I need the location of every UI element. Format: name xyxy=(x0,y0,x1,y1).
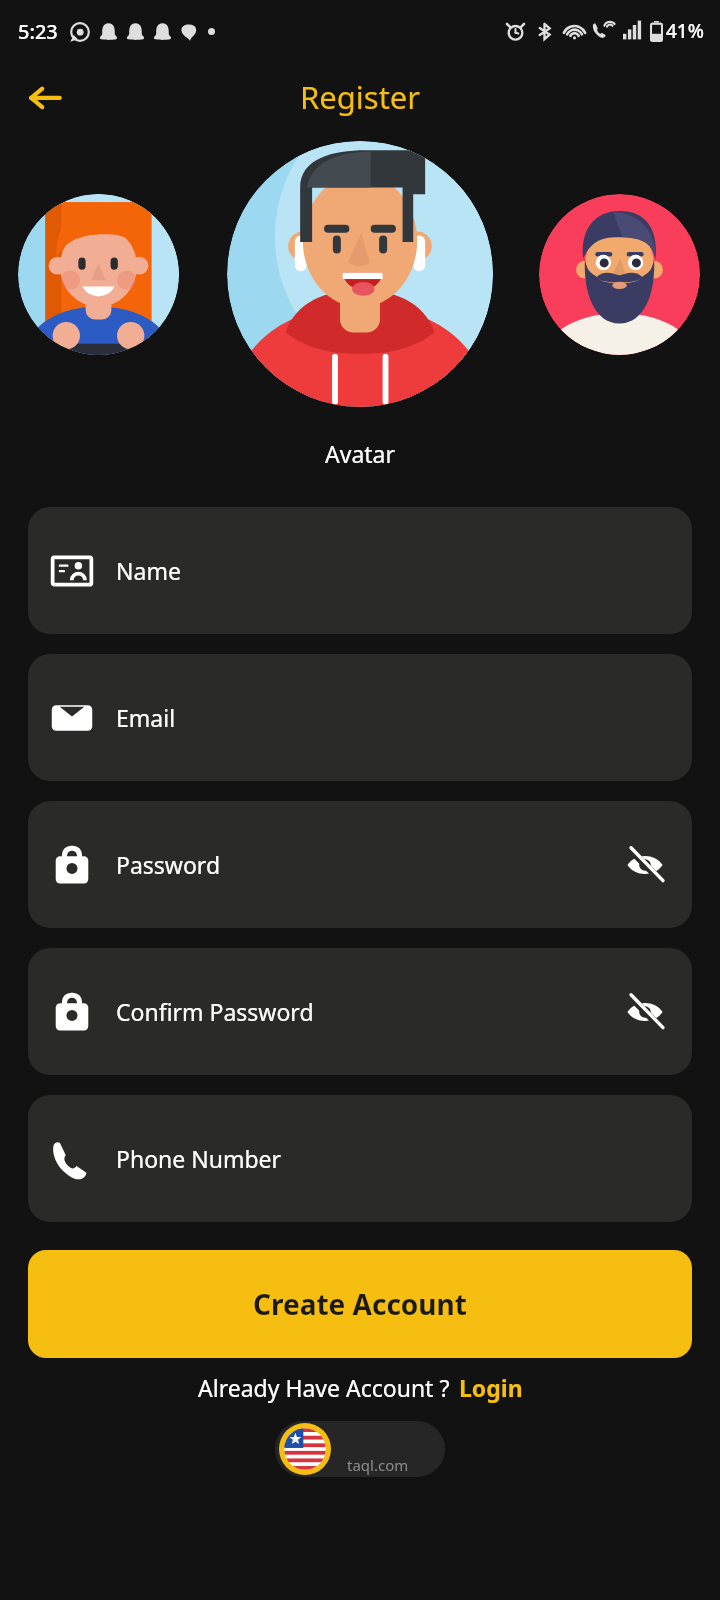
staticText: Create Account xyxy=(253,1285,467,1323)
button[interactable]: Password xyxy=(28,801,692,928)
staticText: Register xyxy=(300,76,421,118)
button[interactable]: Name xyxy=(28,507,692,634)
staticText: 5:23 xyxy=(18,18,58,45)
button[interactable]: Avatar option 1 xyxy=(18,194,179,355)
button[interactable]: Avatar option 2 selected xyxy=(227,141,493,407)
staticText: 41% xyxy=(666,18,704,44)
staticText: Phone Number xyxy=(116,1143,282,1174)
button[interactable]: Toggle password visibility xyxy=(620,840,670,890)
button[interactable]: Confirm Password xyxy=(28,948,692,1075)
staticText: Password xyxy=(116,849,221,880)
staticText: Login xyxy=(459,1372,523,1403)
staticText: Name xyxy=(116,555,181,586)
staticText: Confirm Password xyxy=(116,996,314,1027)
button[interactable]: Back xyxy=(22,74,68,120)
button[interactable]: Email xyxy=(28,654,692,781)
button[interactable]: Phone Number xyxy=(28,1095,692,1222)
staticText: taql.com xyxy=(347,1455,409,1475)
staticText: Already Have Account ? xyxy=(198,1372,450,1403)
staticText: Email xyxy=(116,702,176,733)
button[interactable]: Toggle password visibility xyxy=(620,987,670,1037)
staticText: Avatar xyxy=(0,438,720,469)
button[interactable]: Create Account xyxy=(28,1250,692,1358)
button[interactable]: Avatar option 3 xyxy=(539,194,700,355)
button[interactable]: Login xyxy=(459,1372,523,1403)
